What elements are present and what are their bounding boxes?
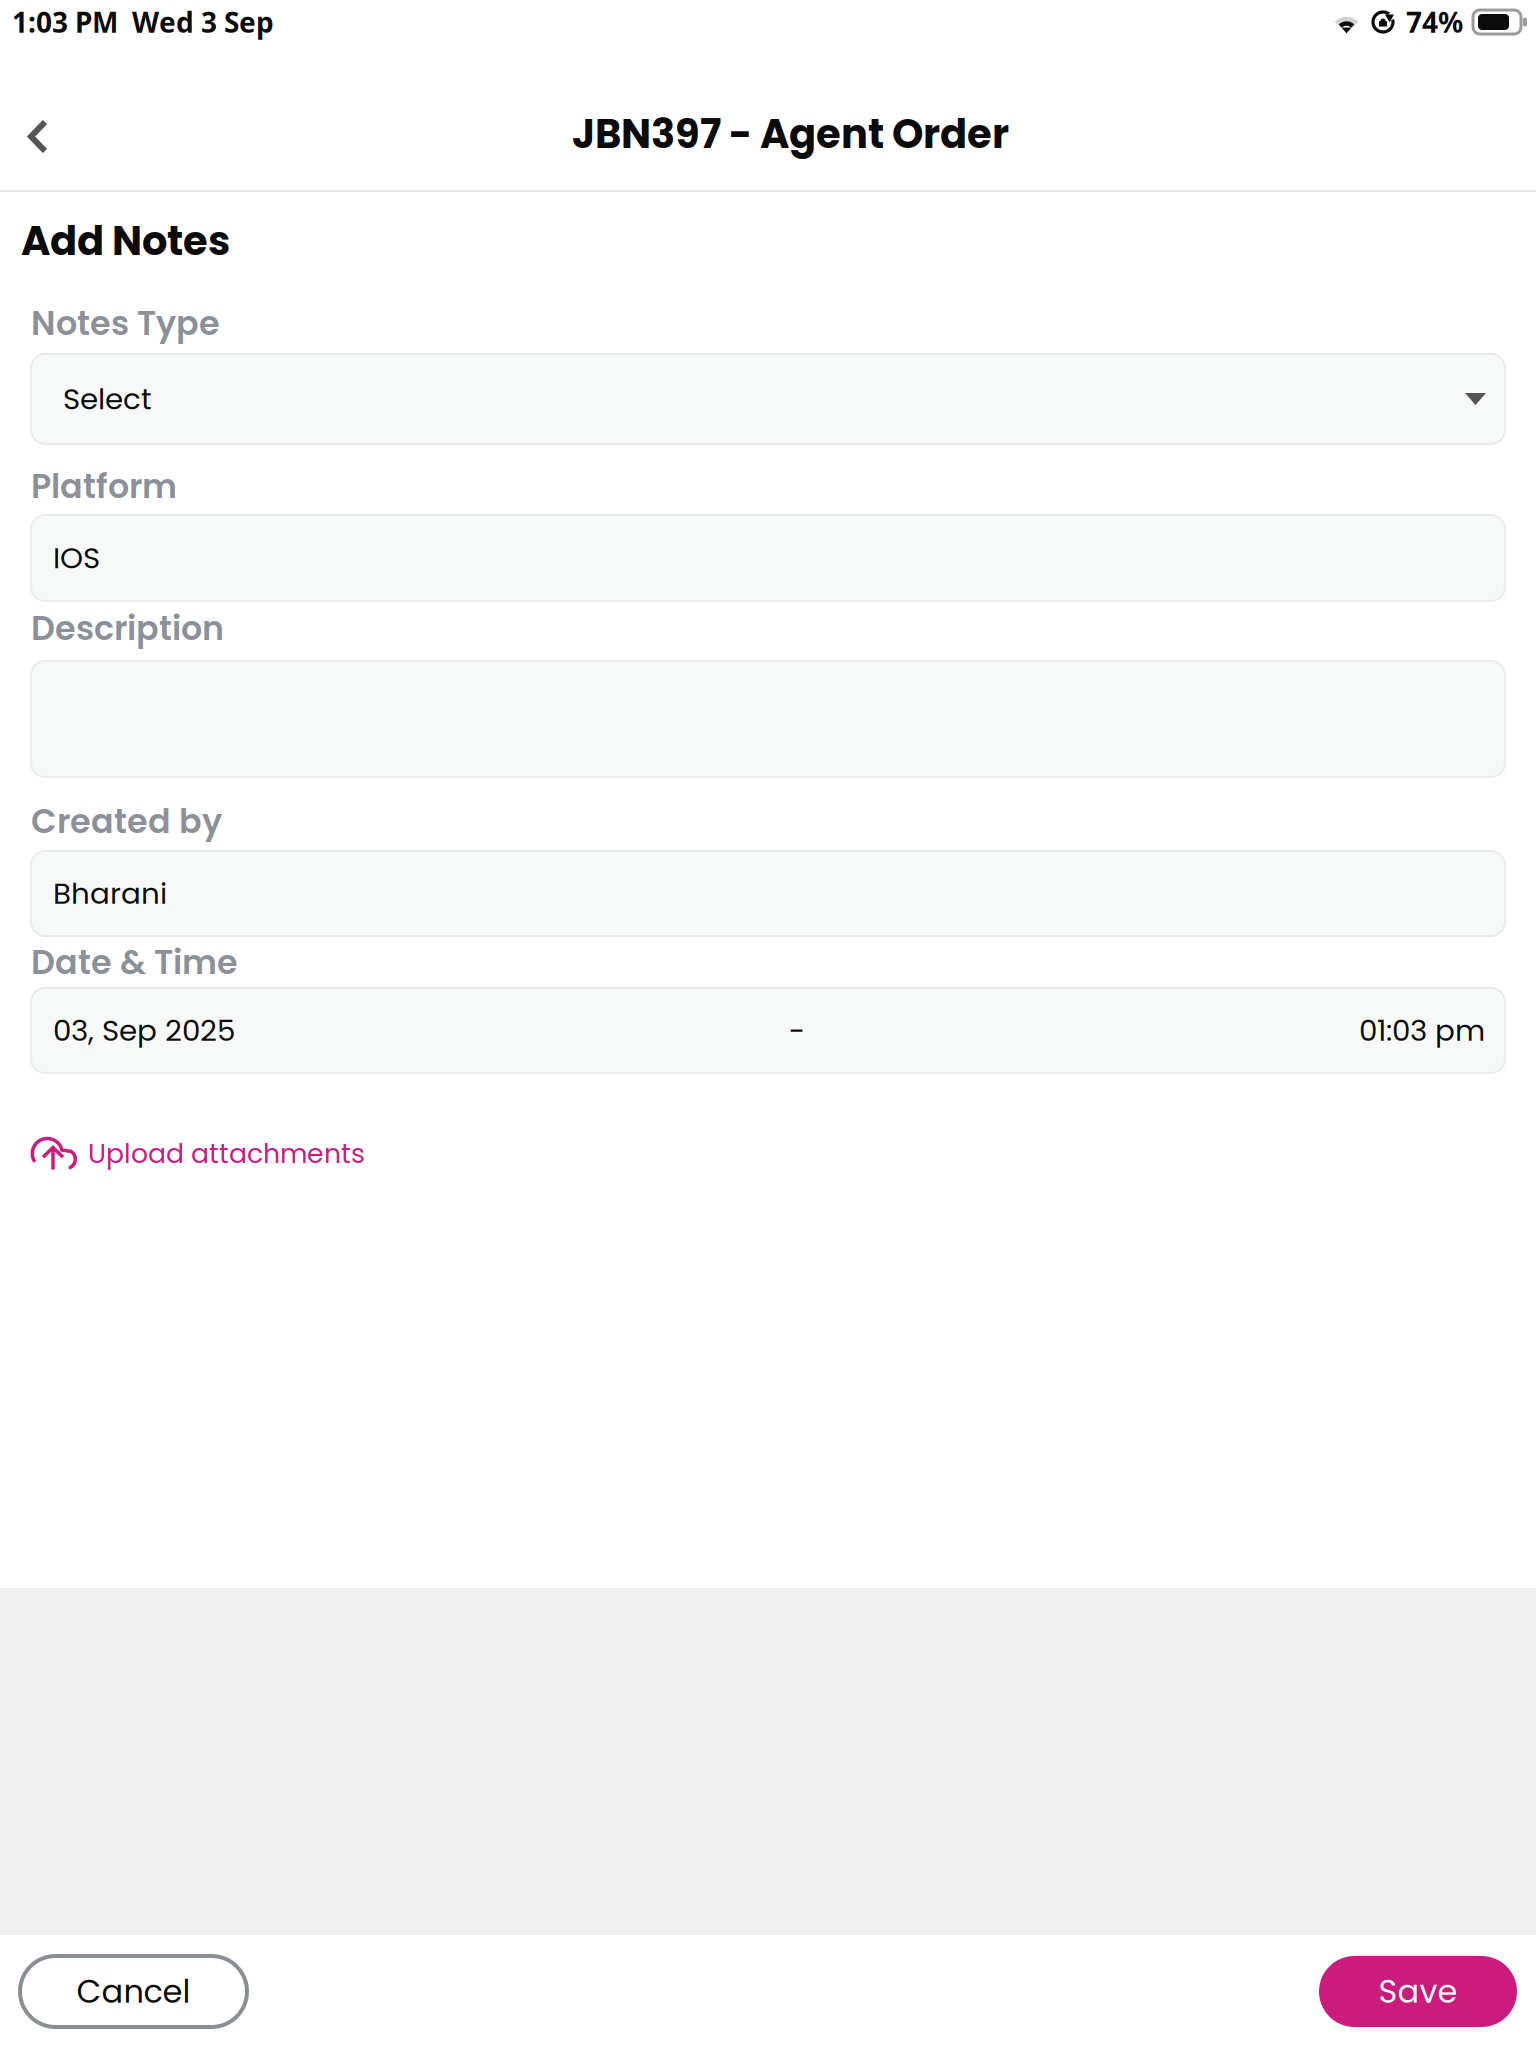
staticText: Platform — [31, 463, 177, 510]
button[interactable]: 03, Sep 2025 — [31, 988, 1505, 1073]
staticText: Wed 3 Sep — [132, 3, 274, 41]
staticText: IOS — [53, 537, 100, 579]
button[interactable]: Select — [31, 354, 1505, 444]
staticText: Description — [31, 605, 224, 652]
staticText: Upload attachments — [88, 1135, 365, 1172]
staticText: Bharani — [53, 873, 167, 914]
staticText: - — [789, 1010, 805, 1051]
button[interactable]: Back — [0, 45, 71, 189]
button[interactable]: Upload attachments — [31, 1134, 365, 1173]
staticText: 03, Sep 2025 — [53, 1010, 235, 1051]
staticText: 74% — [1406, 3, 1463, 41]
staticText: 01:03 pm — [1359, 1010, 1485, 1051]
staticText: Notes Type — [31, 300, 220, 347]
staticText: Cancel — [76, 1969, 190, 2014]
staticText: Save — [1378, 1969, 1457, 2014]
staticText: Date & Time — [31, 939, 238, 986]
staticText: 1:03 PM — [12, 3, 118, 41]
staticText: Add Notes — [21, 213, 230, 269]
staticText: Select — [63, 378, 152, 420]
button[interactable]: Save — [1319, 1956, 1517, 2027]
button[interactable]: Cancel — [20, 1956, 247, 2027]
staticText: JBN397 - Agent Order — [572, 106, 1009, 162]
staticText: Created by — [31, 798, 222, 845]
